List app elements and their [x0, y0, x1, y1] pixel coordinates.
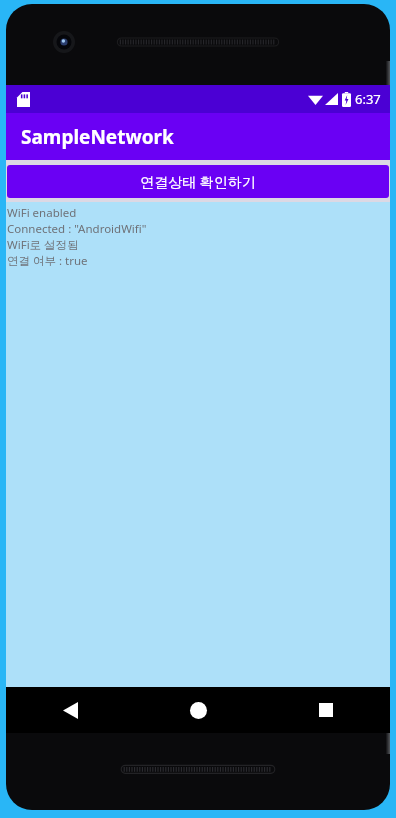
staticText: 연결 여부 : true: [7, 253, 88, 269]
button[interactable]: Home: [134, 687, 262, 733]
staticText: 연결상태 확인하기: [140, 172, 256, 191]
staticText: SampleNetwork: [21, 124, 174, 150]
button[interactable]: Back: [6, 687, 134, 733]
button[interactable]: 연결상태 확인하기: [7, 165, 389, 198]
staticText: WiFi로 설정됨: [7, 237, 79, 253]
staticText: WiFi enabled: [7, 205, 77, 221]
staticText: Connected : "AndroidWifi": [7, 221, 147, 237]
button[interactable]: Recent apps: [262, 687, 390, 733]
staticText: 6:37: [355, 90, 381, 108]
